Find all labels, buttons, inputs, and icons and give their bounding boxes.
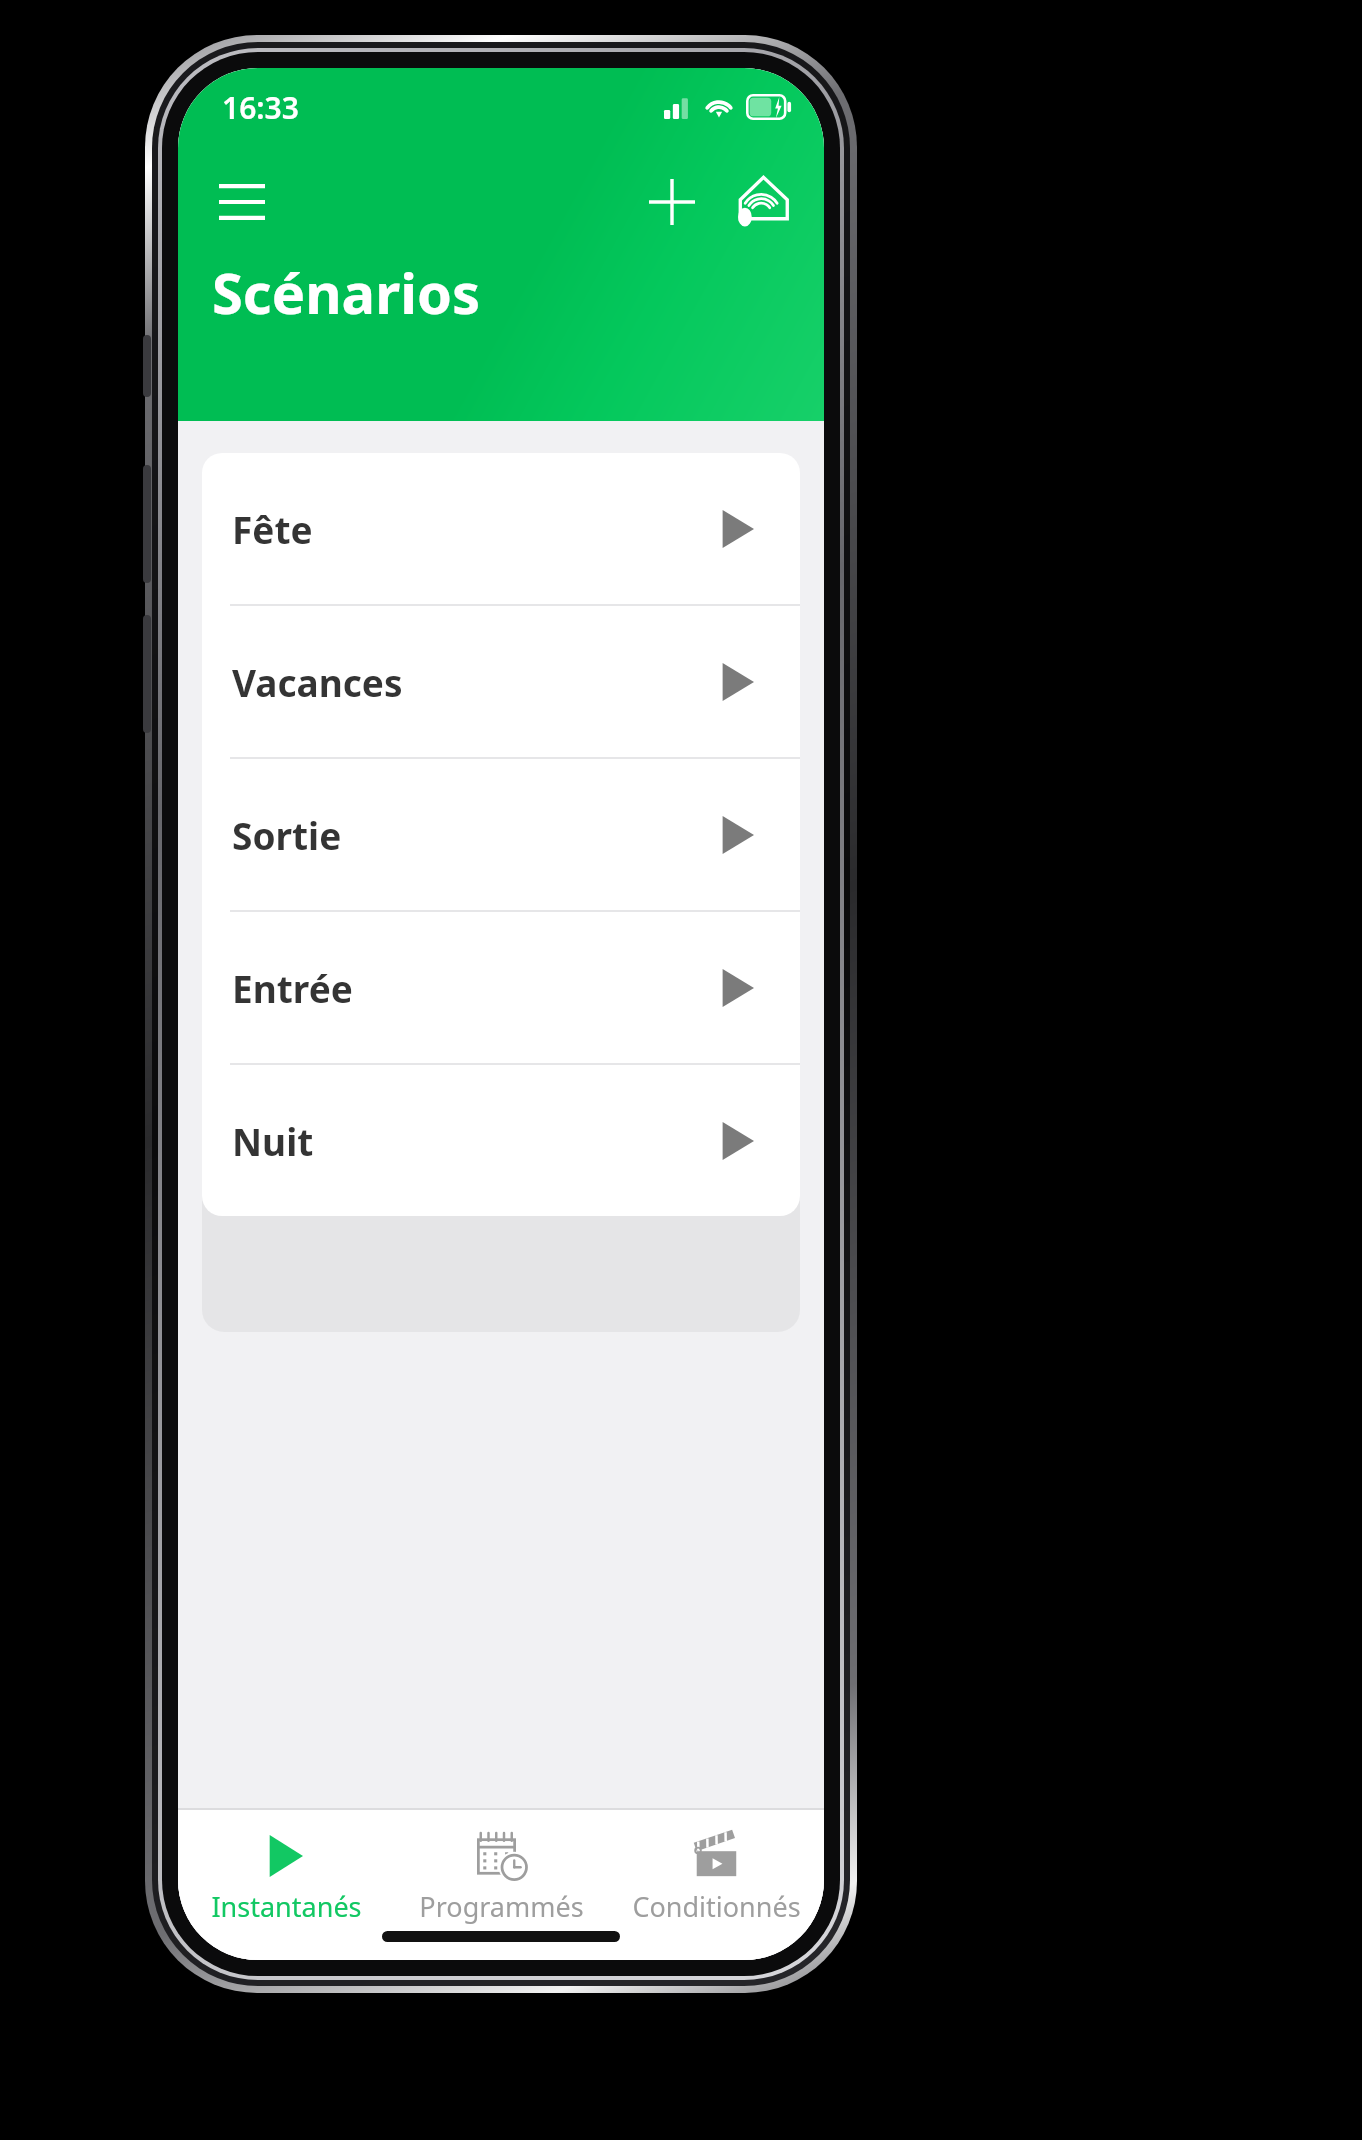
staticText: Scénarios <box>212 254 481 330</box>
button[interactable]: Conditionnés <box>609 1826 824 1929</box>
staticText: Fête <box>232 504 313 554</box>
button[interactable]: Sortie <box>202 759 800 910</box>
staticText: Instantanés <box>211 1888 362 1925</box>
staticText: Nuit <box>232 1116 314 1166</box>
button[interactable]: Programmés <box>394 1826 609 1929</box>
button[interactable]: Add scenario <box>634 164 710 240</box>
button[interactable]: Nuit <box>202 1065 800 1216</box>
button[interactable]: Instantanés <box>178 1826 394 1929</box>
staticText: Sortie <box>232 810 342 860</box>
button[interactable]: Entrée <box>202 912 800 1063</box>
staticText: 16:33 <box>222 87 299 128</box>
staticText: Programmés <box>419 1888 584 1925</box>
staticText: Entrée <box>232 963 353 1013</box>
button[interactable]: Menu <box>204 164 280 240</box>
button[interactable]: Smart home <box>720 162 800 242</box>
button[interactable]: Vacances <box>202 606 800 757</box>
staticText: Conditionnés <box>632 1888 801 1925</box>
button[interactable]: Fête <box>202 453 800 604</box>
staticText: Vacances <box>232 657 403 707</box>
